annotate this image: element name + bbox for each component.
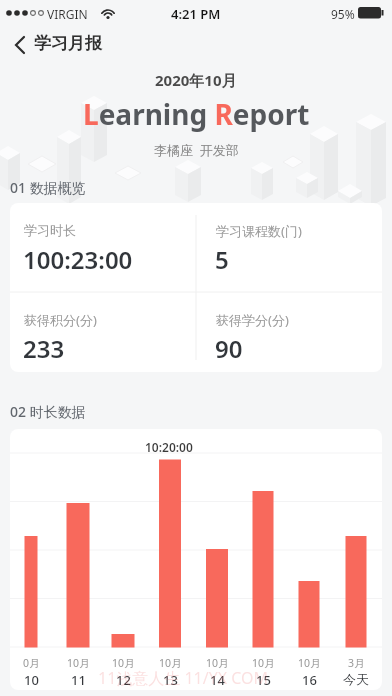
staticText: Learning Report — [83, 95, 310, 133]
staticText: 学习月报 — [34, 33, 102, 54]
staticText: 90 — [215, 332, 243, 365]
staticText: 获得学分(分) — [216, 311, 289, 329]
staticText: 02 时长数据 — [10, 402, 86, 421]
staticText: 10月 — [298, 656, 321, 670]
staticText: 11浅意人生 11/YX COM — [98, 667, 269, 689]
staticText: 3月 — [348, 656, 365, 670]
staticText: 01 数据概览 — [10, 178, 86, 197]
staticText: 11 — [71, 671, 86, 689]
staticText: 10 — [24, 671, 39, 689]
staticText: 4:21 PM — [171, 5, 221, 23]
staticText: 今天 — [343, 671, 369, 687]
staticText: 15 — [256, 671, 271, 689]
staticText: 10:20:00 — [145, 439, 193, 455]
staticText: 233 — [23, 332, 65, 365]
staticText: 学习时长 — [24, 222, 76, 238]
button[interactable]: 学习月报 — [0, 28, 140, 62]
staticText: 10月 — [67, 656, 90, 670]
staticText: 10月 — [206, 656, 229, 670]
staticText: 95% — [331, 6, 355, 22]
staticText: 学习课程数(门) — [216, 222, 302, 240]
staticText: 5 — [215, 243, 229, 276]
staticText: 12 — [116, 671, 131, 689]
staticText: 100:23:00 — [23, 243, 133, 276]
staticText: 16 — [302, 671, 317, 689]
staticText: 10月 — [112, 656, 135, 670]
staticText: 14 — [210, 671, 225, 689]
staticText: 10月 — [252, 656, 275, 670]
staticText: 0月 — [23, 656, 40, 670]
staticText: 李橘座 开发部 — [154, 141, 239, 159]
staticText: 10月 — [159, 656, 182, 670]
staticText: VIRGIN — [47, 6, 88, 22]
staticText: 获得积分(分) — [24, 311, 97, 329]
staticText: 13 — [163, 671, 178, 689]
staticText: 2020年10月 — [155, 70, 237, 90]
